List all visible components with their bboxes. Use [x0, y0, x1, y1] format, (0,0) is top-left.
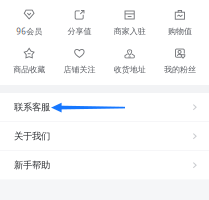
staticText: 商品收藏: [13, 65, 45, 74]
staticText: 购物值: [168, 26, 192, 36]
button[interactable]: 我的粉丝: [155, 48, 205, 74]
button[interactable]: 收货地址: [104, 48, 155, 74]
staticText: 关于我们: [14, 130, 50, 142]
staticText: 联系客服: [14, 101, 50, 113]
staticText: 分享值: [67, 26, 91, 36]
staticText: 新手帮助: [14, 159, 50, 171]
button[interactable]: 新手帮助: [0, 151, 209, 179]
staticText: 商家入驻: [114, 26, 146, 36]
staticText: 我的粉丝: [164, 65, 196, 74]
button[interactable]: 关于我们: [0, 122, 209, 150]
button[interactable]: 店铺关注: [54, 48, 104, 74]
button[interactable]: 分享值: [54, 9, 104, 36]
button[interactable]: 商家入驻: [104, 9, 155, 36]
button[interactable]: 联系客服: [0, 93, 209, 121]
staticText: 96会员: [16, 26, 42, 37]
staticText: 店铺关注: [63, 65, 95, 74]
button[interactable]: 购物值: [155, 9, 205, 36]
button[interactable]: 96会员: [4, 9, 54, 37]
staticText: 收货地址: [114, 65, 146, 74]
button[interactable]: 商品收藏: [4, 48, 54, 74]
